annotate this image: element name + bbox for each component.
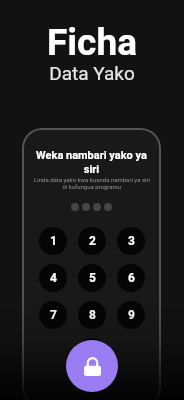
button[interactable]: 3 <box>117 227 145 255</box>
staticText: 7 <box>50 308 57 322</box>
button[interactable]: Lock app <box>66 340 118 392</box>
staticText: Ficha <box>47 21 137 64</box>
staticText: Linda data yako kwa kuanda nambari ya si… <box>34 176 150 190</box>
button[interactable]: 6 <box>117 264 145 292</box>
button[interactable]: 2 <box>78 227 106 255</box>
staticText: 6 <box>128 271 135 285</box>
button[interactable]: 1 <box>39 227 67 255</box>
staticText: 5 <box>89 271 96 285</box>
staticText: 2 <box>89 234 96 248</box>
button[interactable]: 9 <box>117 301 145 329</box>
staticText: Weka nambari yako ya siri <box>34 149 149 176</box>
staticText: 1 <box>50 234 57 248</box>
button[interactable]: 7 <box>39 301 67 329</box>
button[interactable]: 8 <box>78 301 106 329</box>
staticText: 8 <box>89 308 96 322</box>
button[interactable]: 0 <box>78 338 106 366</box>
staticText: 9 <box>128 308 135 322</box>
staticText: Data Yako <box>49 62 135 84</box>
staticText: 3 <box>128 234 135 248</box>
button[interactable]: 5 <box>78 264 106 292</box>
button[interactable]: 4 <box>39 264 67 292</box>
staticText: 0 <box>89 345 96 359</box>
staticText: 4 <box>50 271 57 285</box>
